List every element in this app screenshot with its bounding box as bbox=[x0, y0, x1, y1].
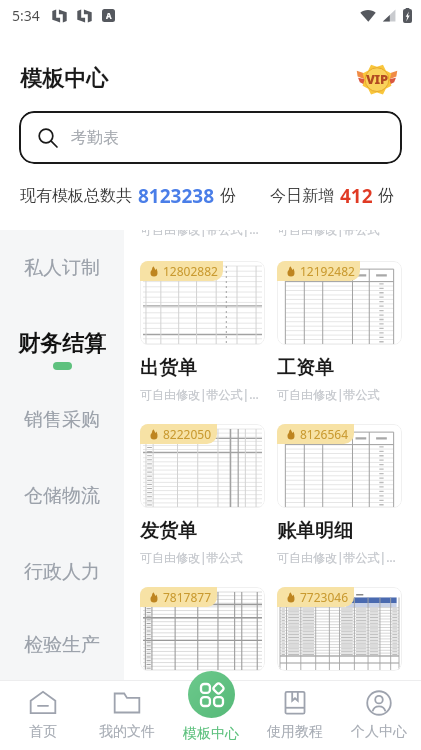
staticText: 首页 bbox=[29, 723, 57, 741]
staticText: 使用教程 bbox=[267, 723, 323, 741]
button[interactable]: 8126564 bbox=[277, 424, 402, 565]
staticText: 412 bbox=[340, 183, 373, 209]
staticText: 可自由修改|带公式|… bbox=[140, 386, 259, 402]
button[interactable]: 考勤表 bbox=[19, 111, 402, 164]
staticText: 12192482 bbox=[300, 263, 355, 279]
button[interactable]: 财务结算 bbox=[0, 306, 124, 382]
button[interactable]: 私人订制 bbox=[0, 230, 124, 306]
button[interactable]: 我的文件 bbox=[85, 680, 169, 750]
button[interactable]: 7817877 bbox=[140, 587, 265, 680]
button[interactable]: 12802882 bbox=[140, 261, 265, 402]
staticText: 8126564 bbox=[300, 426, 349, 442]
staticText: 模板中心 bbox=[20, 65, 108, 93]
staticText: A bbox=[106, 10, 112, 21]
button[interactable]: 使用教程 bbox=[253, 680, 337, 750]
staticText: 个人中心 bbox=[351, 723, 407, 741]
staticText: 财务结算 bbox=[18, 330, 106, 358]
staticText: 现有模板总数共 bbox=[20, 186, 132, 206]
button[interactable]: 模板中心 bbox=[169, 671, 253, 741]
staticText: 12802882 bbox=[163, 263, 218, 279]
staticText: 仓储物流 bbox=[24, 484, 100, 508]
button[interactable]: 首页 bbox=[0, 680, 85, 750]
staticText: 8222050 bbox=[163, 426, 212, 442]
staticText: 行政人力 bbox=[24, 560, 100, 584]
staticText: 我的文件 bbox=[99, 723, 155, 741]
staticText: 可自由修改|带公式 bbox=[140, 549, 243, 565]
staticText: 8123238 bbox=[138, 183, 215, 209]
button[interactable]: 行政人力 bbox=[0, 534, 124, 610]
button[interactable]: 检验生产 bbox=[0, 610, 124, 680]
staticText: 可自由修改|带公式|… bbox=[277, 549, 396, 565]
staticText: 账单明细 bbox=[277, 519, 353, 543]
staticText: 可自由修改|带公式 bbox=[277, 230, 402, 237]
staticText: 出货单 bbox=[140, 356, 197, 380]
staticText: 5:34 bbox=[12, 6, 40, 25]
staticText: 模板中心 bbox=[183, 725, 239, 741]
staticText: 工资单 bbox=[277, 356, 334, 380]
staticText: 私人订制 bbox=[24, 256, 100, 280]
staticText: 可自由修改|带公式|… bbox=[140, 230, 265, 237]
button[interactable]: 7723046 bbox=[277, 587, 402, 680]
button[interactable]: 8222050 bbox=[140, 424, 265, 565]
staticText: 发货单 bbox=[140, 519, 197, 543]
staticText: 份 bbox=[378, 186, 394, 206]
button[interactable]: VIP bbox=[355, 63, 399, 95]
staticText: 7817877 bbox=[163, 589, 212, 605]
staticText: 今日新增 bbox=[270, 186, 334, 206]
staticText: VIP bbox=[366, 70, 388, 88]
staticText: 考勤表 bbox=[71, 128, 119, 148]
staticText: 份 bbox=[220, 186, 236, 206]
staticText: 7723046 bbox=[300, 589, 349, 605]
staticText: 可自由修改|带公式 bbox=[277, 386, 380, 402]
button[interactable]: 个人中心 bbox=[337, 680, 421, 750]
staticText: 销售采购 bbox=[24, 408, 100, 432]
button[interactable]: 12192482 bbox=[277, 261, 402, 402]
staticText: 检验生产 bbox=[24, 633, 100, 657]
button[interactable]: 销售采购 bbox=[0, 382, 124, 458]
button[interactable]: 仓储物流 bbox=[0, 458, 124, 534]
